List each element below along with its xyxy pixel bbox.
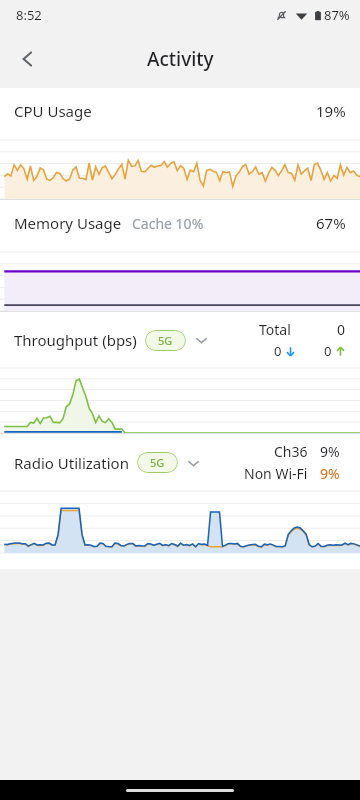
staticText: 9% — [320, 464, 346, 483]
staticText: 87% — [324, 6, 350, 24]
staticText: Ch36 — [274, 442, 308, 461]
button[interactable]: Back — [6, 37, 50, 81]
button[interactable]: Expand — [190, 329, 212, 351]
staticText: Radio Utilization — [14, 453, 129, 473]
staticText: 0 — [274, 342, 282, 360]
button[interactable]: 5G — [137, 452, 178, 473]
staticText: Cache 10% — [132, 214, 204, 233]
staticText: 8:52 — [16, 6, 42, 24]
staticText: Total — [259, 320, 291, 339]
staticText: 19% — [316, 101, 346, 121]
staticText: Activity — [147, 46, 214, 72]
staticText: Non Wi-Fi — [244, 464, 308, 483]
staticText: 9% — [320, 442, 346, 461]
staticText: 5G — [150, 455, 165, 470]
staticText: 67% — [316, 213, 346, 233]
button[interactable]: Expand — [182, 452, 204, 474]
staticText: Memory Usage — [14, 213, 122, 233]
button[interactable]: 5G — [145, 330, 186, 351]
staticText: Throughput (bps) — [14, 330, 137, 350]
staticText: 0 — [337, 320, 346, 339]
staticText: 5G — [158, 333, 173, 348]
staticText: CPU Usage — [14, 101, 92, 121]
staticText: 0 — [324, 342, 332, 360]
